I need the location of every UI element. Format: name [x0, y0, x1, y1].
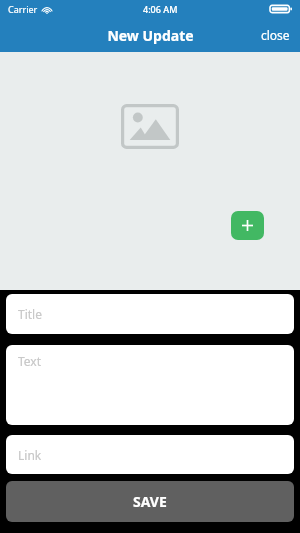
staticText: 4:06 AM — [143, 3, 178, 15]
button[interactable]: Add image — [231, 211, 264, 240]
staticText: Link — [18, 447, 42, 463]
button[interactable]: Link — [6, 435, 294, 474]
button[interactable]: close — [251, 21, 300, 49]
button[interactable]: Text — [6, 345, 294, 425]
staticText: Title — [18, 306, 42, 322]
staticText: Carrier — [8, 3, 38, 15]
staticText: New Update — [107, 26, 194, 45]
button[interactable]: SAVE — [6, 481, 294, 522]
button[interactable]: Title — [6, 294, 294, 334]
staticText: close — [261, 27, 290, 43]
staticText: Text — [18, 353, 42, 369]
staticText: SAVE — [133, 492, 167, 511]
